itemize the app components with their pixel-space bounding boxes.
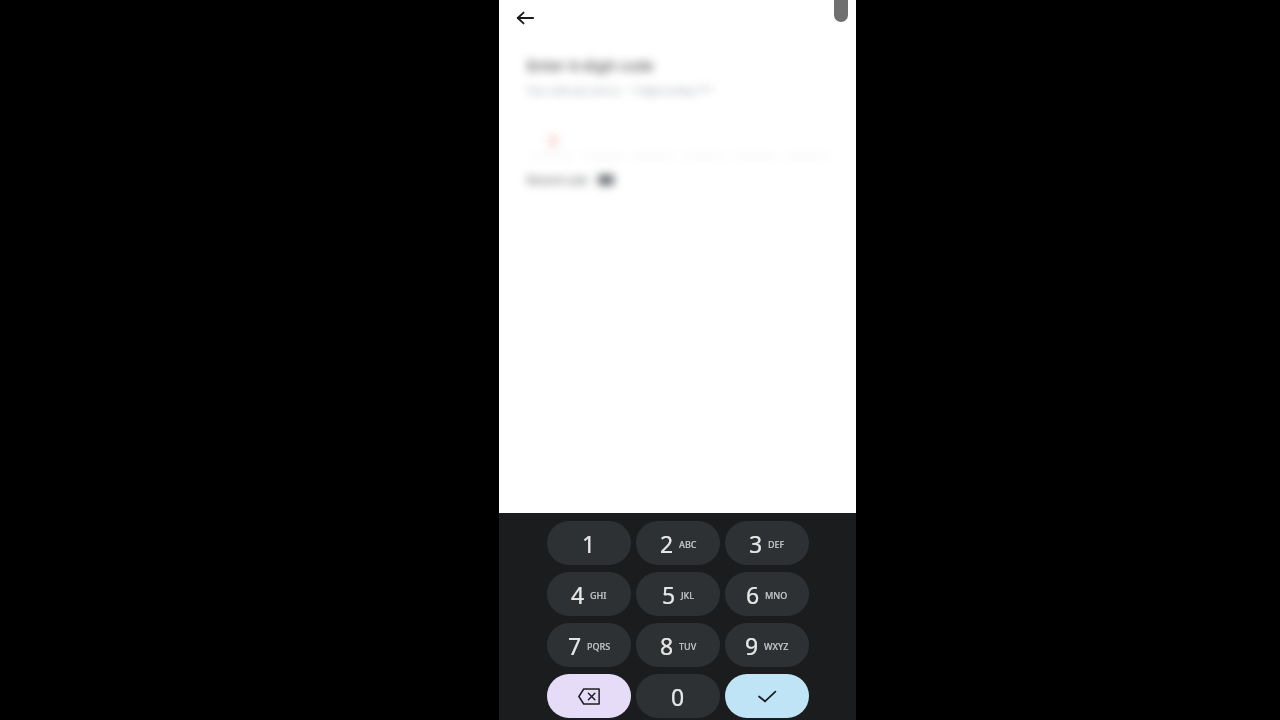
- staticText: MNO: [765, 589, 788, 601]
- button[interactable]: 7: [547, 623, 631, 667]
- staticText: 4: [571, 579, 585, 610]
- staticText: 1: [582, 528, 596, 559]
- button[interactable]: 2: [636, 521, 720, 565]
- staticText: 5: [662, 579, 676, 610]
- button[interactable]: 4: [547, 572, 631, 616]
- staticText: 9: [745, 630, 759, 661]
- staticText: JKL: [681, 589, 695, 601]
- button[interactable]: Back: [507, 0, 543, 36]
- staticText: PQRS: [587, 640, 611, 652]
- staticText: 7: [568, 630, 582, 661]
- staticText: Your code was sent to • 7 digits ending …: [527, 84, 713, 96]
- button[interactable]: 5: [636, 572, 720, 616]
- button[interactable]: 8: [636, 623, 720, 667]
- staticText: 2: [660, 528, 674, 559]
- staticText: Enter 6-digit code: [527, 55, 654, 75]
- staticText: GHI: [590, 589, 607, 601]
- staticText: ABC: [679, 538, 697, 550]
- staticText: DEF: [768, 538, 785, 550]
- button[interactable]: 3: [725, 521, 809, 565]
- staticText: 8: [660, 630, 674, 661]
- staticText: 6: [746, 579, 760, 610]
- staticText: 0: [671, 681, 685, 712]
- staticText: WXYZ: [764, 640, 789, 652]
- staticText: TUV: [679, 640, 697, 652]
- button[interactable]: Backspace: [547, 674, 631, 718]
- button[interactable]: 9: [725, 623, 809, 667]
- button[interactable]: 0: [636, 674, 720, 718]
- button[interactable]: 6: [725, 572, 809, 616]
- staticText: 3: [548, 130, 557, 150]
- button[interactable]: 1: [547, 521, 631, 565]
- staticText: Resend code: [527, 173, 588, 187]
- staticText: 3: [749, 528, 763, 559]
- button[interactable]: Confirm: [725, 674, 809, 718]
